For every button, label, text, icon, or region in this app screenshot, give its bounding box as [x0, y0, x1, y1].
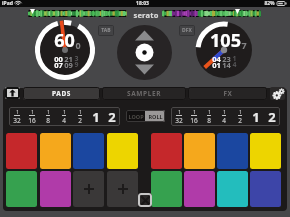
- staticText: 01: [212, 60, 221, 70]
- staticText: 1: [79, 109, 82, 115]
- button[interactable]: FX: [188, 87, 267, 100]
- button[interactable]: [73, 133, 104, 169]
- staticText: FX: [223, 89, 233, 98]
- button[interactable]: [184, 133, 215, 169]
- staticText: 1: [252, 108, 260, 126]
- button[interactable]: TAB: [98, 25, 114, 36]
- staticText: 82%: [264, 0, 275, 7]
- staticText: 2: [78, 116, 82, 125]
- staticText: 4: [62, 116, 66, 125]
- staticText: 18:03: [136, 0, 149, 7]
- button[interactable]: 1: [171, 107, 186, 126]
- button[interactable]: 1: [24, 107, 40, 126]
- staticText: 9: [74, 60, 79, 70]
- staticText: 1: [223, 109, 226, 115]
- staticText: 32: [13, 116, 21, 125]
- button[interactable]: [217, 133, 248, 169]
- button[interactable]: [73, 171, 104, 207]
- staticText: 8: [46, 116, 50, 125]
- staticText: 2: [238, 116, 242, 125]
- staticText: 1: [16, 109, 19, 115]
- button[interactable]: [217, 171, 248, 207]
- staticText: TAB: [101, 27, 111, 34]
- button[interactable]: SAMPLER: [102, 87, 186, 100]
- staticText: serato: [133, 10, 159, 20]
- staticText: 1: [178, 109, 181, 115]
- staticText: ROLL: [148, 113, 163, 120]
- button[interactable]: 1: [186, 107, 201, 126]
- staticText: 0: [75, 39, 81, 51]
- button[interactable]: [6, 171, 37, 207]
- button[interactable]: [250, 171, 281, 207]
- button[interactable]: 1: [232, 107, 248, 126]
- button[interactable]: PADS: [23, 87, 100, 100]
- staticText: 1: [31, 109, 34, 115]
- button[interactable]: 1: [88, 107, 104, 126]
- button[interactable]: Close: [138, 193, 152, 207]
- staticText: 4: [222, 116, 226, 125]
- button[interactable]: DFX: [179, 25, 195, 36]
- staticText: 2: [108, 108, 116, 126]
- staticText: 1: [92, 108, 100, 126]
- staticText: 60: [54, 28, 75, 53]
- staticText: 1: [193, 109, 196, 115]
- button[interactable]: Deck transfer control: [117, 25, 172, 80]
- button[interactable]: [107, 171, 138, 207]
- staticText: 16: [28, 116, 36, 125]
- button[interactable]: LOOP: [126, 110, 145, 122]
- staticText: 1: [208, 109, 211, 115]
- staticText: 04: [212, 54, 221, 64]
- staticText: 4: [232, 60, 237, 70]
- button[interactable]: [151, 171, 182, 207]
- staticText: PADS: [52, 89, 71, 98]
- staticText: 14: [222, 60, 231, 70]
- staticText: 16: [190, 116, 198, 125]
- button[interactable]: 2: [104, 107, 120, 126]
- button[interactable]: [40, 171, 71, 207]
- button[interactable]: Settings: [270, 87, 285, 100]
- staticText: SAMPLER: [127, 89, 161, 98]
- button[interactable]: [151, 133, 182, 169]
- button[interactable]: ROLL: [145, 110, 165, 122]
- button[interactable]: 2: [264, 107, 280, 126]
- staticText: 07: [54, 60, 63, 70]
- staticText: 3: [74, 54, 79, 64]
- button[interactable]: 1: [72, 107, 88, 126]
- staticText: 1: [239, 109, 242, 115]
- staticText: 23: [222, 54, 231, 64]
- staticText: 105: [210, 28, 241, 53]
- button[interactable]: 1: [201, 107, 216, 126]
- button[interactable]: [107, 133, 138, 169]
- staticText: DFX: [182, 27, 192, 34]
- button[interactable]: [184, 171, 215, 207]
- staticText: 2: [268, 108, 276, 126]
- staticText: 09: [64, 60, 73, 70]
- staticText: 21: [64, 54, 73, 64]
- button[interactable]: [250, 133, 281, 169]
- button[interactable]: 1: [9, 107, 24, 126]
- button[interactable]: 1: [56, 107, 72, 126]
- button[interactable]: 1: [248, 107, 264, 126]
- staticText: iPad: [2, 0, 13, 7]
- staticText: 1: [47, 109, 50, 115]
- button[interactable]: [40, 133, 71, 169]
- staticText: 8: [207, 116, 211, 125]
- button[interactable]: 1: [216, 107, 232, 126]
- staticText: 00: [54, 54, 63, 64]
- button[interactable]: [6, 133, 37, 169]
- staticText: 7: [241, 39, 247, 51]
- staticText: LOOP: [128, 113, 144, 120]
- button[interactable]: 1: [40, 107, 56, 126]
- staticText: 1: [232, 54, 237, 64]
- button[interactable]: Load track: [5, 87, 20, 99]
- staticText: 1: [63, 109, 66, 115]
- staticText: 32: [175, 116, 183, 125]
